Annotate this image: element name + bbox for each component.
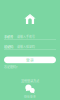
staticText: 请输入手机号 (17, 35, 35, 39)
button[interactable]: 登录 (4, 57, 56, 63)
staticText: 请输入验证码 (17, 45, 35, 49)
staticText: 验证码 (4, 44, 13, 49)
staticText: 手机号 (4, 34, 13, 39)
button[interactable]: 忘记密码? (4, 65, 18, 69)
staticText: 其他登录方式 (21, 78, 39, 83)
staticText: 登录 (26, 57, 34, 63)
button[interactable]: WeChat login (24, 84, 36, 98)
staticText: 忘记密码? (4, 65, 18, 69)
staticText: 微信登录 (24, 94, 36, 98)
